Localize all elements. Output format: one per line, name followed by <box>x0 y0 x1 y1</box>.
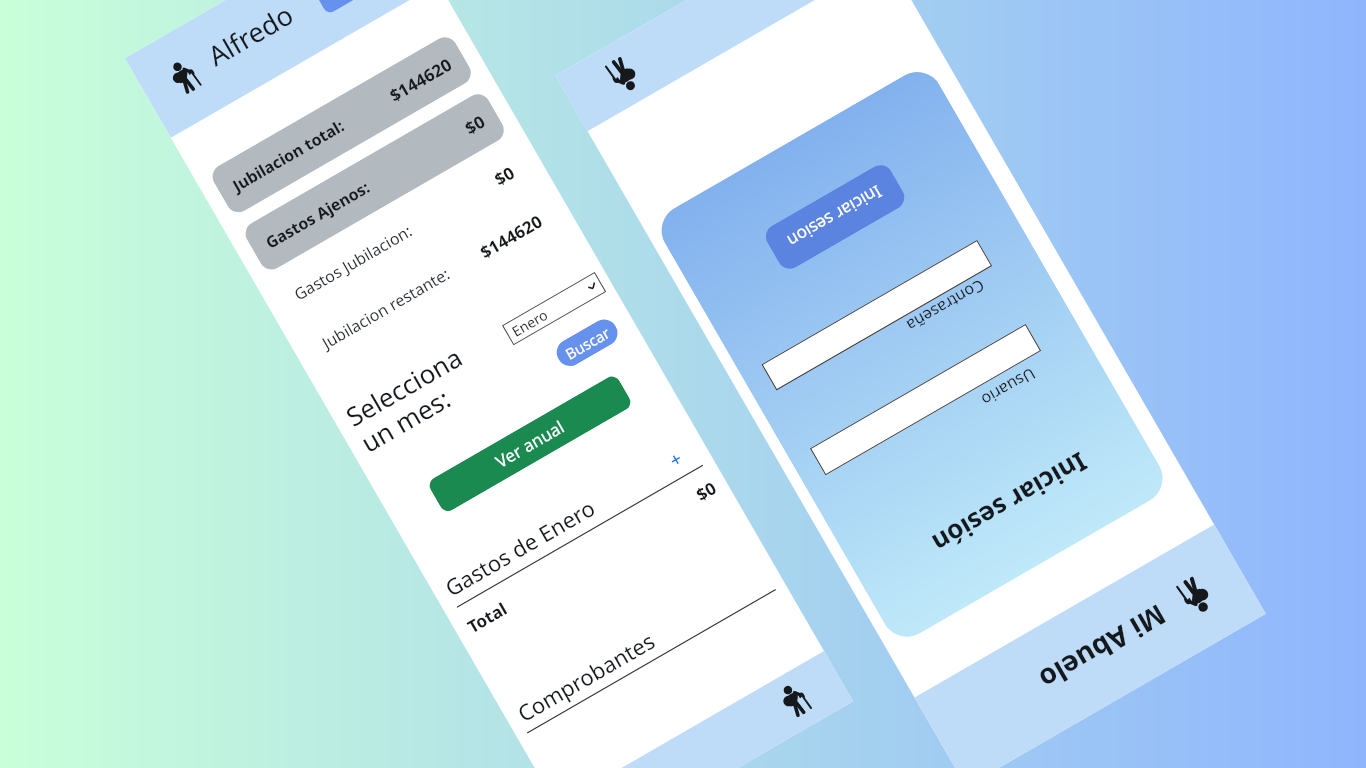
staticText: Ver anual <box>491 415 569 473</box>
staticText: Jubilacion total: <box>228 114 348 196</box>
staticText: Contraseña <box>902 274 988 337</box>
button[interactable]: Cerrar sesion <box>313 0 367 15</box>
staticText: $0 <box>490 161 519 191</box>
button[interactable]: Jubilacion restante: <box>314 202 550 361</box>
staticText: Enero <box>508 305 551 341</box>
staticText: Iniciar sesion <box>783 180 886 253</box>
button[interactable]: Ver anual <box>426 373 634 514</box>
button[interactable]: Usuario <box>810 324 1041 475</box>
button[interactable]: Agregar gasto <box>660 443 688 471</box>
staticText: Gastos de Enero <box>439 492 601 602</box>
button[interactable]: Alfredo <box>125 0 438 138</box>
staticText: Usuario <box>977 363 1039 411</box>
button[interactable]: Total <box>460 471 723 642</box>
button[interactable]: Iniciar sesion <box>761 160 909 273</box>
button[interactable]: Mi Abuelo <box>915 525 1266 768</box>
staticText: Comprobantes <box>512 625 660 728</box>
button[interactable]: Gastos Ajenos: <box>241 90 508 274</box>
staticText: $0 <box>461 110 489 139</box>
button[interactable]: Jubilacion total: <box>208 32 475 217</box>
staticText: Gastos Ajenos: <box>261 176 374 254</box>
button[interactable]: Buscar <box>552 314 622 371</box>
staticText: Iniciar sesión <box>926 445 1093 562</box>
button[interactable]: Perfil <box>556 651 853 768</box>
button[interactable]: Contraseña <box>761 240 992 390</box>
staticText: $0 <box>692 476 721 506</box>
staticText: + <box>665 445 684 468</box>
button[interactable]: Perfil <box>556 0 887 131</box>
button[interactable]: Gastos Jubilacion: <box>286 154 522 312</box>
staticText: Buscar <box>561 322 614 364</box>
staticText: $144620 <box>476 209 547 264</box>
staticText: Jubilacion restante: <box>318 263 454 354</box>
staticText: $144620 <box>385 52 456 107</box>
staticText: Mi Abuelo <box>1033 596 1173 699</box>
staticText: Selecciona un mes: <box>339 339 484 460</box>
staticText: Gastos Jubilacion: <box>290 220 416 305</box>
button[interactable]: Enero <box>502 272 606 345</box>
staticText: Total <box>463 597 511 638</box>
staticText: Alfredo <box>201 0 300 74</box>
